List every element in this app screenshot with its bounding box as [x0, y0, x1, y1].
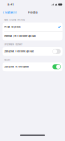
button[interactable]: Zobrazovat ve vyhledávání [2, 62, 62, 71]
button[interactable]: Ponechat jen v knihovně aplikací [2, 32, 62, 40]
button[interactable]: Přidat na plochu [2, 23, 62, 31]
staticText: Plocha [28, 11, 37, 14]
staticText: Ponechat jen v knihovně aplikací [4, 35, 36, 37]
button[interactable]: Nastavení [0, 10, 17, 15]
button[interactable]: Zobrazovat v knihovně aplikací [2, 47, 62, 56]
staticText: NOVĚ STAŽENÉ APLIKACE [4, 19, 25, 21]
staticText: Nastavení [5, 11, 17, 14]
staticText: Zobrazovat ve vyhledávání [4, 65, 29, 68]
staticText: Zobrazovat v knihovně aplikací [4, 50, 34, 53]
staticText: UPOZORNĚNÍ ODZNAKY [4, 43, 22, 46]
staticText: HLEDAT [4, 59, 10, 61]
staticText: Přidat na plochu [4, 26, 20, 28]
staticText: 9:41 [7, 3, 13, 6]
